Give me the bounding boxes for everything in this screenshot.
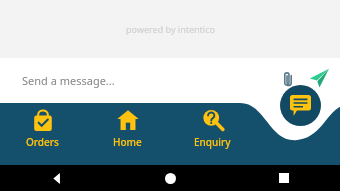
staticText: Send a message... [22, 73, 115, 88]
button[interactable]: Recents [227, 165, 340, 191]
staticText: Home [113, 135, 142, 149]
staticText: powered by intentico [126, 23, 215, 35]
button[interactable]: Back [0, 165, 114, 191]
button[interactable]: Send [306, 65, 332, 91]
button[interactable]: Send a message... [22, 73, 115, 88]
staticText: Orders [26, 135, 59, 149]
button[interactable]: Chat [280, 85, 321, 126]
button[interactable]: Home [85, 103, 170, 149]
button[interactable]: Enquiry [170, 103, 255, 149]
button[interactable]: Attach file [276, 67, 300, 91]
button[interactable]: Home [114, 165, 227, 191]
button[interactable]: Orders [0, 103, 85, 149]
staticText: Enquiry [194, 135, 231, 149]
